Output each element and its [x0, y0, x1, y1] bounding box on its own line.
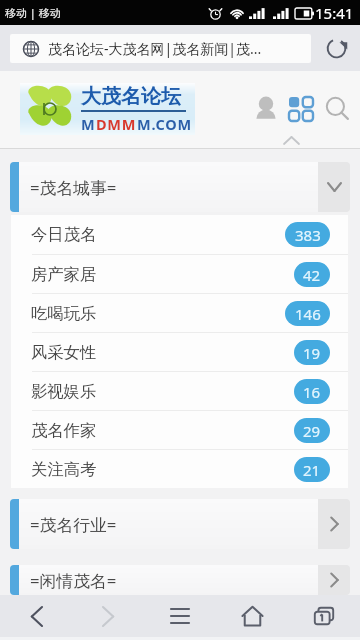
staticText: 大茂名论坛	[81, 84, 181, 109]
button[interactable]: Search	[319, 90, 357, 128]
button[interactable]: 大茂名论坛	[20, 83, 195, 135]
staticText: 42	[303, 265, 321, 285]
staticText: 29	[303, 421, 321, 441]
staticText: 19	[303, 343, 321, 363]
staticText: 146	[295, 304, 321, 324]
button[interactable]: Forward	[72, 595, 144, 637]
staticText: 移动 | 移动	[5, 5, 61, 20]
staticText: 吃喝玩乐	[31, 303, 97, 324]
button[interactable]: =闲情茂名=	[10, 565, 350, 595]
staticText: 茂名论坛-大茂名网|茂名新闻|茂...	[48, 39, 262, 58]
staticText: 383	[295, 225, 321, 245]
staticText: 影视娱乐	[31, 381, 97, 402]
button[interactable]: Categories	[283, 91, 319, 127]
staticText: 房产家居	[31, 264, 97, 285]
staticText: M.COM	[137, 114, 192, 134]
staticText: 15:41	[315, 3, 354, 23]
staticText: 茂名作家	[31, 420, 97, 441]
button[interactable]: 关注高考	[11, 450, 348, 488]
staticText: M	[81, 114, 96, 134]
button[interactable]: 吃喝玩乐	[11, 294, 348, 332]
staticText: 21	[303, 460, 321, 480]
staticText: 风采女性	[31, 342, 97, 363]
button[interactable]: Tabs	[288, 595, 360, 637]
staticText: DMM	[96, 114, 137, 134]
button[interactable]: 茂名作家	[11, 411, 348, 449]
button[interactable]: 风采女性	[11, 333, 348, 371]
button[interactable]: Account	[249, 92, 283, 126]
button[interactable]: 房产家居	[11, 255, 348, 293]
button[interactable]: 影视娱乐	[11, 372, 348, 410]
button[interactable]: Home	[216, 595, 288, 637]
staticText: =茂名城事=	[30, 176, 117, 199]
button[interactable]: 今日茂名	[11, 215, 348, 254]
staticText: 16	[303, 382, 321, 402]
button[interactable]: Menu	[144, 595, 216, 637]
staticText: =闲情茂名=	[30, 569, 117, 592]
button[interactable]: =茂名城事=	[10, 162, 350, 212]
staticText: =茂名行业=	[30, 513, 117, 536]
staticText: 关注高考	[31, 459, 97, 480]
button[interactable]: 茂名论坛-大茂名网|茂名新闻|茂...	[10, 34, 311, 63]
button[interactable]: Back	[0, 595, 72, 637]
button[interactable]: =茂名行业=	[10, 499, 350, 549]
staticText: 今日茂名	[31, 224, 97, 245]
button[interactable]: Reload	[312, 25, 360, 71]
